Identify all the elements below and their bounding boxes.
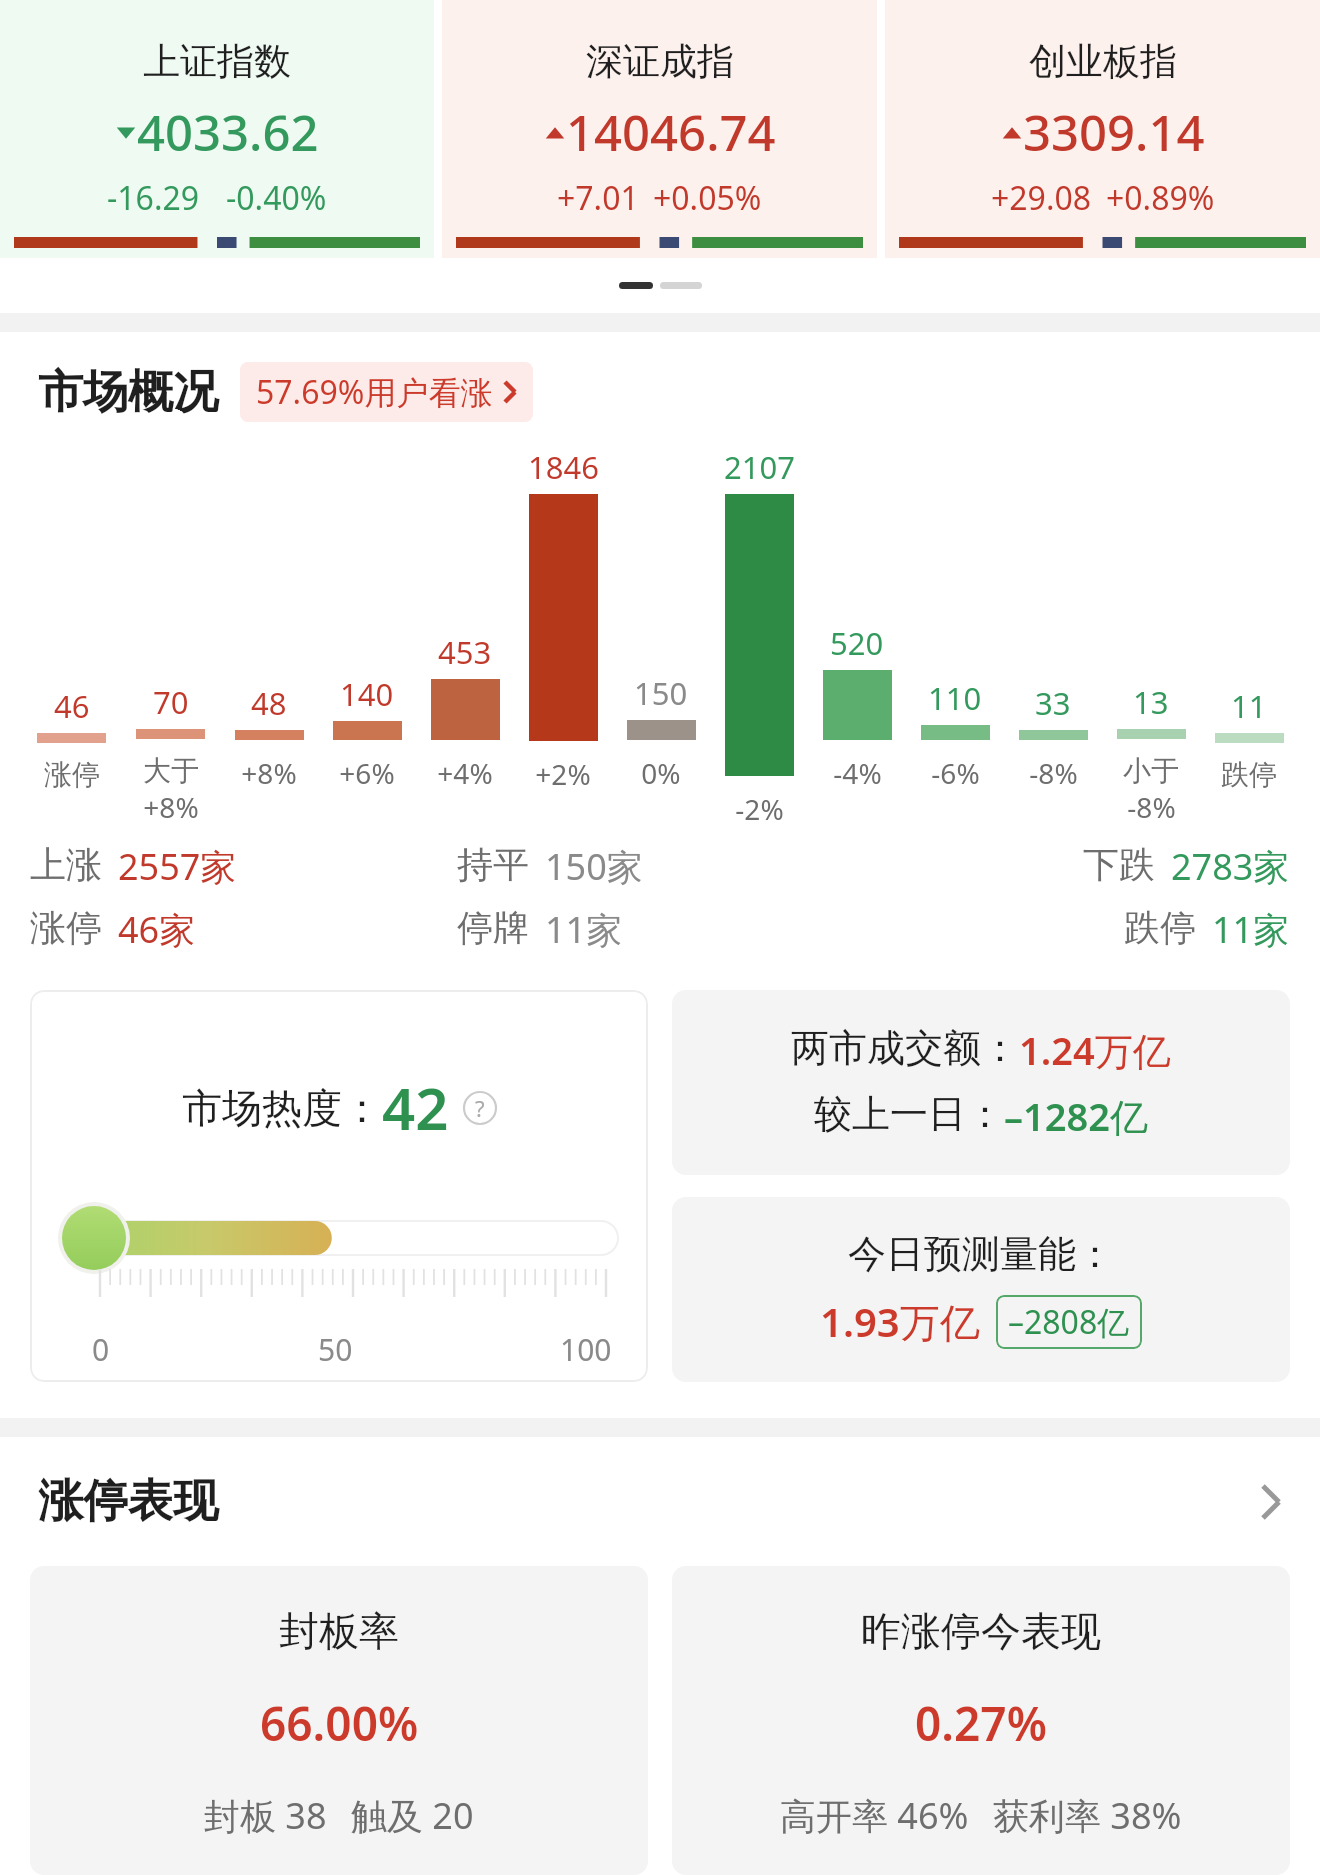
button[interactable]: 市场热度：	[30, 990, 648, 1382]
staticText: 13	[1133, 681, 1169, 723]
staticText: 上涨	[30, 842, 102, 887]
staticText: 跌停	[1221, 757, 1277, 792]
staticText: 3309.14	[1023, 99, 1205, 166]
staticText: 0.27%	[915, 1692, 1047, 1755]
staticText: 大于	[143, 753, 199, 788]
button[interactable]: 说明	[463, 1091, 497, 1125]
button[interactable]: 昨涨停今表现	[672, 1566, 1290, 1875]
staticText: 1.24万亿	[1019, 1024, 1171, 1076]
button[interactable]: 上证指数	[0, 0, 434, 258]
button[interactable]: 57.69%用户看涨	[240, 362, 533, 422]
staticText: 封板 38	[204, 1791, 327, 1840]
staticText: -2%	[735, 790, 784, 826]
staticText: 涨停	[30, 905, 102, 950]
staticText: -4%	[833, 754, 882, 792]
staticText: 110	[928, 677, 982, 719]
staticText: 140	[340, 673, 394, 715]
staticText: 封板率	[279, 1606, 399, 1656]
staticText: 创业板指	[1029, 38, 1177, 85]
staticText: 深证成指	[586, 38, 734, 85]
staticText: -16.29	[107, 176, 200, 220]
button[interactable]: 深证成指	[442, 0, 877, 258]
staticText: 453	[438, 631, 492, 673]
staticText: +7.01	[557, 176, 639, 220]
staticText: 50	[318, 1329, 353, 1370]
staticText: -8%	[1127, 788, 1176, 826]
staticText: 0%	[641, 754, 681, 792]
staticText: 小于	[1123, 753, 1179, 788]
staticText: +6%	[339, 754, 395, 792]
staticText: +29.08	[991, 176, 1092, 220]
staticText: 46	[54, 685, 90, 727]
staticText: +2%	[535, 755, 591, 793]
staticText: 持平	[457, 842, 529, 887]
staticText: 520	[830, 622, 884, 664]
staticText: +8%	[241, 754, 297, 792]
staticText: 150家	[545, 842, 643, 891]
button[interactable]: 封板率	[30, 1566, 648, 1875]
other: 更多	[1260, 1483, 1282, 1521]
staticText: 1.93万亿	[820, 1294, 980, 1349]
staticText: +0.89%	[1106, 176, 1215, 220]
staticText: 较上一日：	[814, 1090, 1004, 1138]
staticText: 2783家	[1171, 842, 1290, 891]
staticText: 市场概况	[38, 364, 218, 421]
staticText: 2107	[724, 446, 795, 488]
staticText: 1846	[528, 446, 599, 488]
staticText: 停牌	[457, 905, 529, 950]
staticText: 跌停	[1124, 905, 1196, 950]
staticText: –2808亿	[1008, 1300, 1130, 1344]
staticText: 100	[560, 1329, 612, 1370]
staticText: 今日预测量能：	[848, 1230, 1114, 1278]
button[interactable]: 涨停表现	[0, 1473, 1320, 1530]
staticText: 涨停	[44, 757, 100, 792]
staticText: 66.00%	[260, 1692, 419, 1755]
staticText: 46家	[118, 905, 196, 954]
staticText: -6%	[931, 754, 980, 792]
staticText: 11	[1231, 685, 1267, 727]
button[interactable]: 创业板指	[885, 0, 1320, 258]
staticText: +8%	[143, 788, 199, 826]
staticText: 获利率 38%	[993, 1791, 1182, 1840]
staticText: 11家	[545, 905, 623, 954]
staticText: 150	[634, 672, 688, 714]
staticText: 昨涨停今表现	[861, 1606, 1101, 1656]
staticText: 33	[1035, 682, 1071, 724]
staticText: –1282亿	[1004, 1090, 1148, 1142]
staticText: 0	[92, 1329, 110, 1370]
staticText: 42	[382, 1068, 449, 1147]
staticText: 2557家	[118, 842, 237, 891]
staticText: 上证指数	[143, 38, 291, 85]
button[interactable]: 今日预测量能：	[672, 1197, 1290, 1382]
staticText: 涨停表现	[38, 1473, 218, 1530]
staticText: -8%	[1029, 754, 1078, 792]
staticText: 48	[251, 682, 287, 724]
staticText: +0.05%	[653, 176, 762, 220]
staticText: 市场热度：	[182, 1083, 382, 1133]
staticText: ?	[475, 1093, 485, 1123]
staticText: 触及 20	[351, 1791, 474, 1840]
staticText: +4%	[437, 754, 493, 792]
staticText: 57.69%用户看涨	[256, 370, 493, 414]
staticText: 14046.74	[566, 99, 776, 166]
staticText: 下跌	[1083, 842, 1155, 887]
staticText: 两市成交额：	[791, 1024, 1019, 1072]
staticText: 4033.62	[137, 99, 319, 166]
staticText: -0.40%	[226, 176, 327, 220]
staticText: 11家	[1212, 905, 1290, 954]
button[interactable]: 两市成交额：	[672, 990, 1290, 1175]
staticText: 70	[153, 681, 189, 723]
staticText: 高开率 46%	[780, 1791, 969, 1840]
